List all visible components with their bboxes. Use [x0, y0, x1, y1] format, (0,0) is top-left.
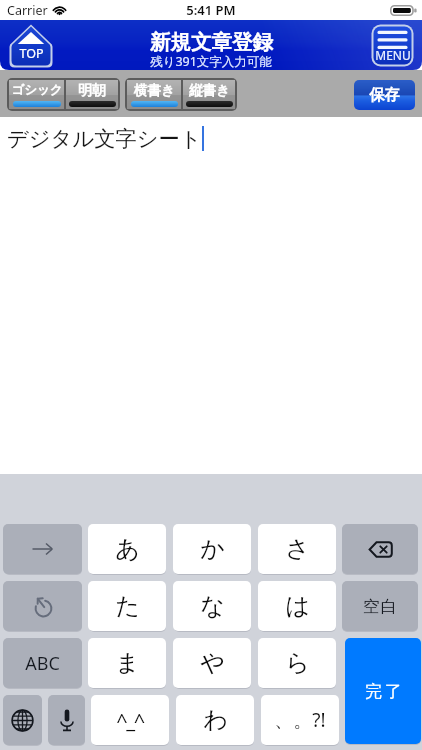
staticText: ま — [115, 648, 140, 678]
staticText: ゴシック — [11, 82, 63, 98]
button[interactable]: Next — [3, 524, 82, 574]
staticText: な — [200, 591, 225, 621]
staticText: 5:41 PM — [186, 1, 236, 19]
button[interactable]: ま — [88, 638, 166, 688]
button[interactable]: あ — [88, 524, 166, 574]
button[interactable]: ABC — [3, 638, 82, 688]
button[interactable]: 明朝 — [66, 80, 118, 109]
button[interactable]: ら — [258, 638, 336, 688]
button[interactable]: 横書き — [127, 80, 181, 109]
staticText: た — [115, 591, 140, 621]
staticText: 横書き — [134, 82, 175, 99]
staticText: TOP — [19, 45, 44, 62]
staticText: 新規文章登録 — [150, 29, 273, 55]
staticText: MENU — [375, 47, 411, 63]
button[interactable]: 縦書き — [183, 80, 235, 109]
button[interactable]: か — [173, 524, 251, 574]
button[interactable]: さ — [258, 524, 336, 574]
button[interactable]: 空白 — [342, 581, 418, 631]
button[interactable]: TOP — [9, 24, 53, 68]
button[interactable]: Delete — [342, 524, 418, 574]
staticText: Carrier — [7, 2, 48, 19]
staticText: や — [200, 648, 225, 678]
button[interactable]: Undo — [3, 581, 82, 631]
staticText: ら — [285, 648, 310, 678]
staticText: ^_^ — [116, 707, 144, 734]
staticText: 空白 — [362, 596, 398, 617]
button[interactable]: な — [173, 581, 251, 631]
button[interactable]: Punctuation — [261, 695, 339, 745]
button[interactable]: た — [88, 581, 166, 631]
staticText: あ — [115, 534, 140, 564]
button[interactable]: MENU — [371, 24, 414, 67]
staticText: か — [200, 534, 225, 564]
staticText: さ — [285, 534, 310, 564]
staticText: 明朝 — [78, 82, 106, 100]
button[interactable]: ゴシック — [9, 80, 64, 109]
staticText: ABC — [25, 651, 60, 676]
button[interactable]: わ — [176, 695, 254, 745]
button[interactable]: 保存 — [354, 80, 415, 110]
button[interactable]: Language — [3, 695, 42, 745]
staticText: デジタル文字シート — [7, 125, 202, 152]
button[interactable]: Dictation — [48, 695, 85, 745]
staticText: 完了 — [364, 681, 403, 702]
staticText: わ — [203, 705, 228, 735]
button[interactable]: や — [173, 638, 251, 688]
staticText: 保存 — [369, 85, 400, 105]
button[interactable]: Small — [91, 695, 169, 745]
staticText: は — [285, 591, 310, 621]
button[interactable]: は — [258, 581, 336, 631]
staticText: 縦書き — [189, 82, 230, 99]
staticText: 、。?! — [274, 707, 326, 733]
button[interactable]: 完了 — [345, 638, 421, 744]
staticText: 残り391文字入力可能 — [150, 53, 272, 70]
